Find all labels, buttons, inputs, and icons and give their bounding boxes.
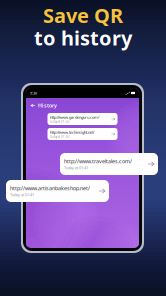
button[interactable]: http://www.artisanbakeshop.net/: [6, 180, 109, 202]
staticText: http://www.gardenguru.com/: [50, 115, 99, 120]
staticText: to history: [34, 25, 132, 51]
staticText: Today at 01:42: [50, 120, 70, 123]
staticText: http://www.artisanbakeshop.net/: [10, 185, 90, 192]
button[interactable]: http://www.techinsight.net/: [47, 128, 117, 140]
button[interactable]: Back: [31, 104, 35, 107]
staticText: Today at 01:42: [50, 135, 70, 138]
staticText: Today at 01:41: [10, 192, 34, 197]
staticText: http://www.traveltales.com/: [64, 158, 132, 165]
staticText: http://www.techinsight.net/: [50, 130, 94, 135]
button[interactable]: http://www.gardenguru.com/: [47, 113, 117, 125]
staticText: 9:30: [30, 90, 37, 96]
staticText: Save QR: [43, 2, 123, 29]
staticText: History: [38, 102, 57, 109]
staticText: Today at 01:41: [64, 165, 88, 170]
button[interactable]: http://www.traveltales.com/: [60, 153, 158, 175]
